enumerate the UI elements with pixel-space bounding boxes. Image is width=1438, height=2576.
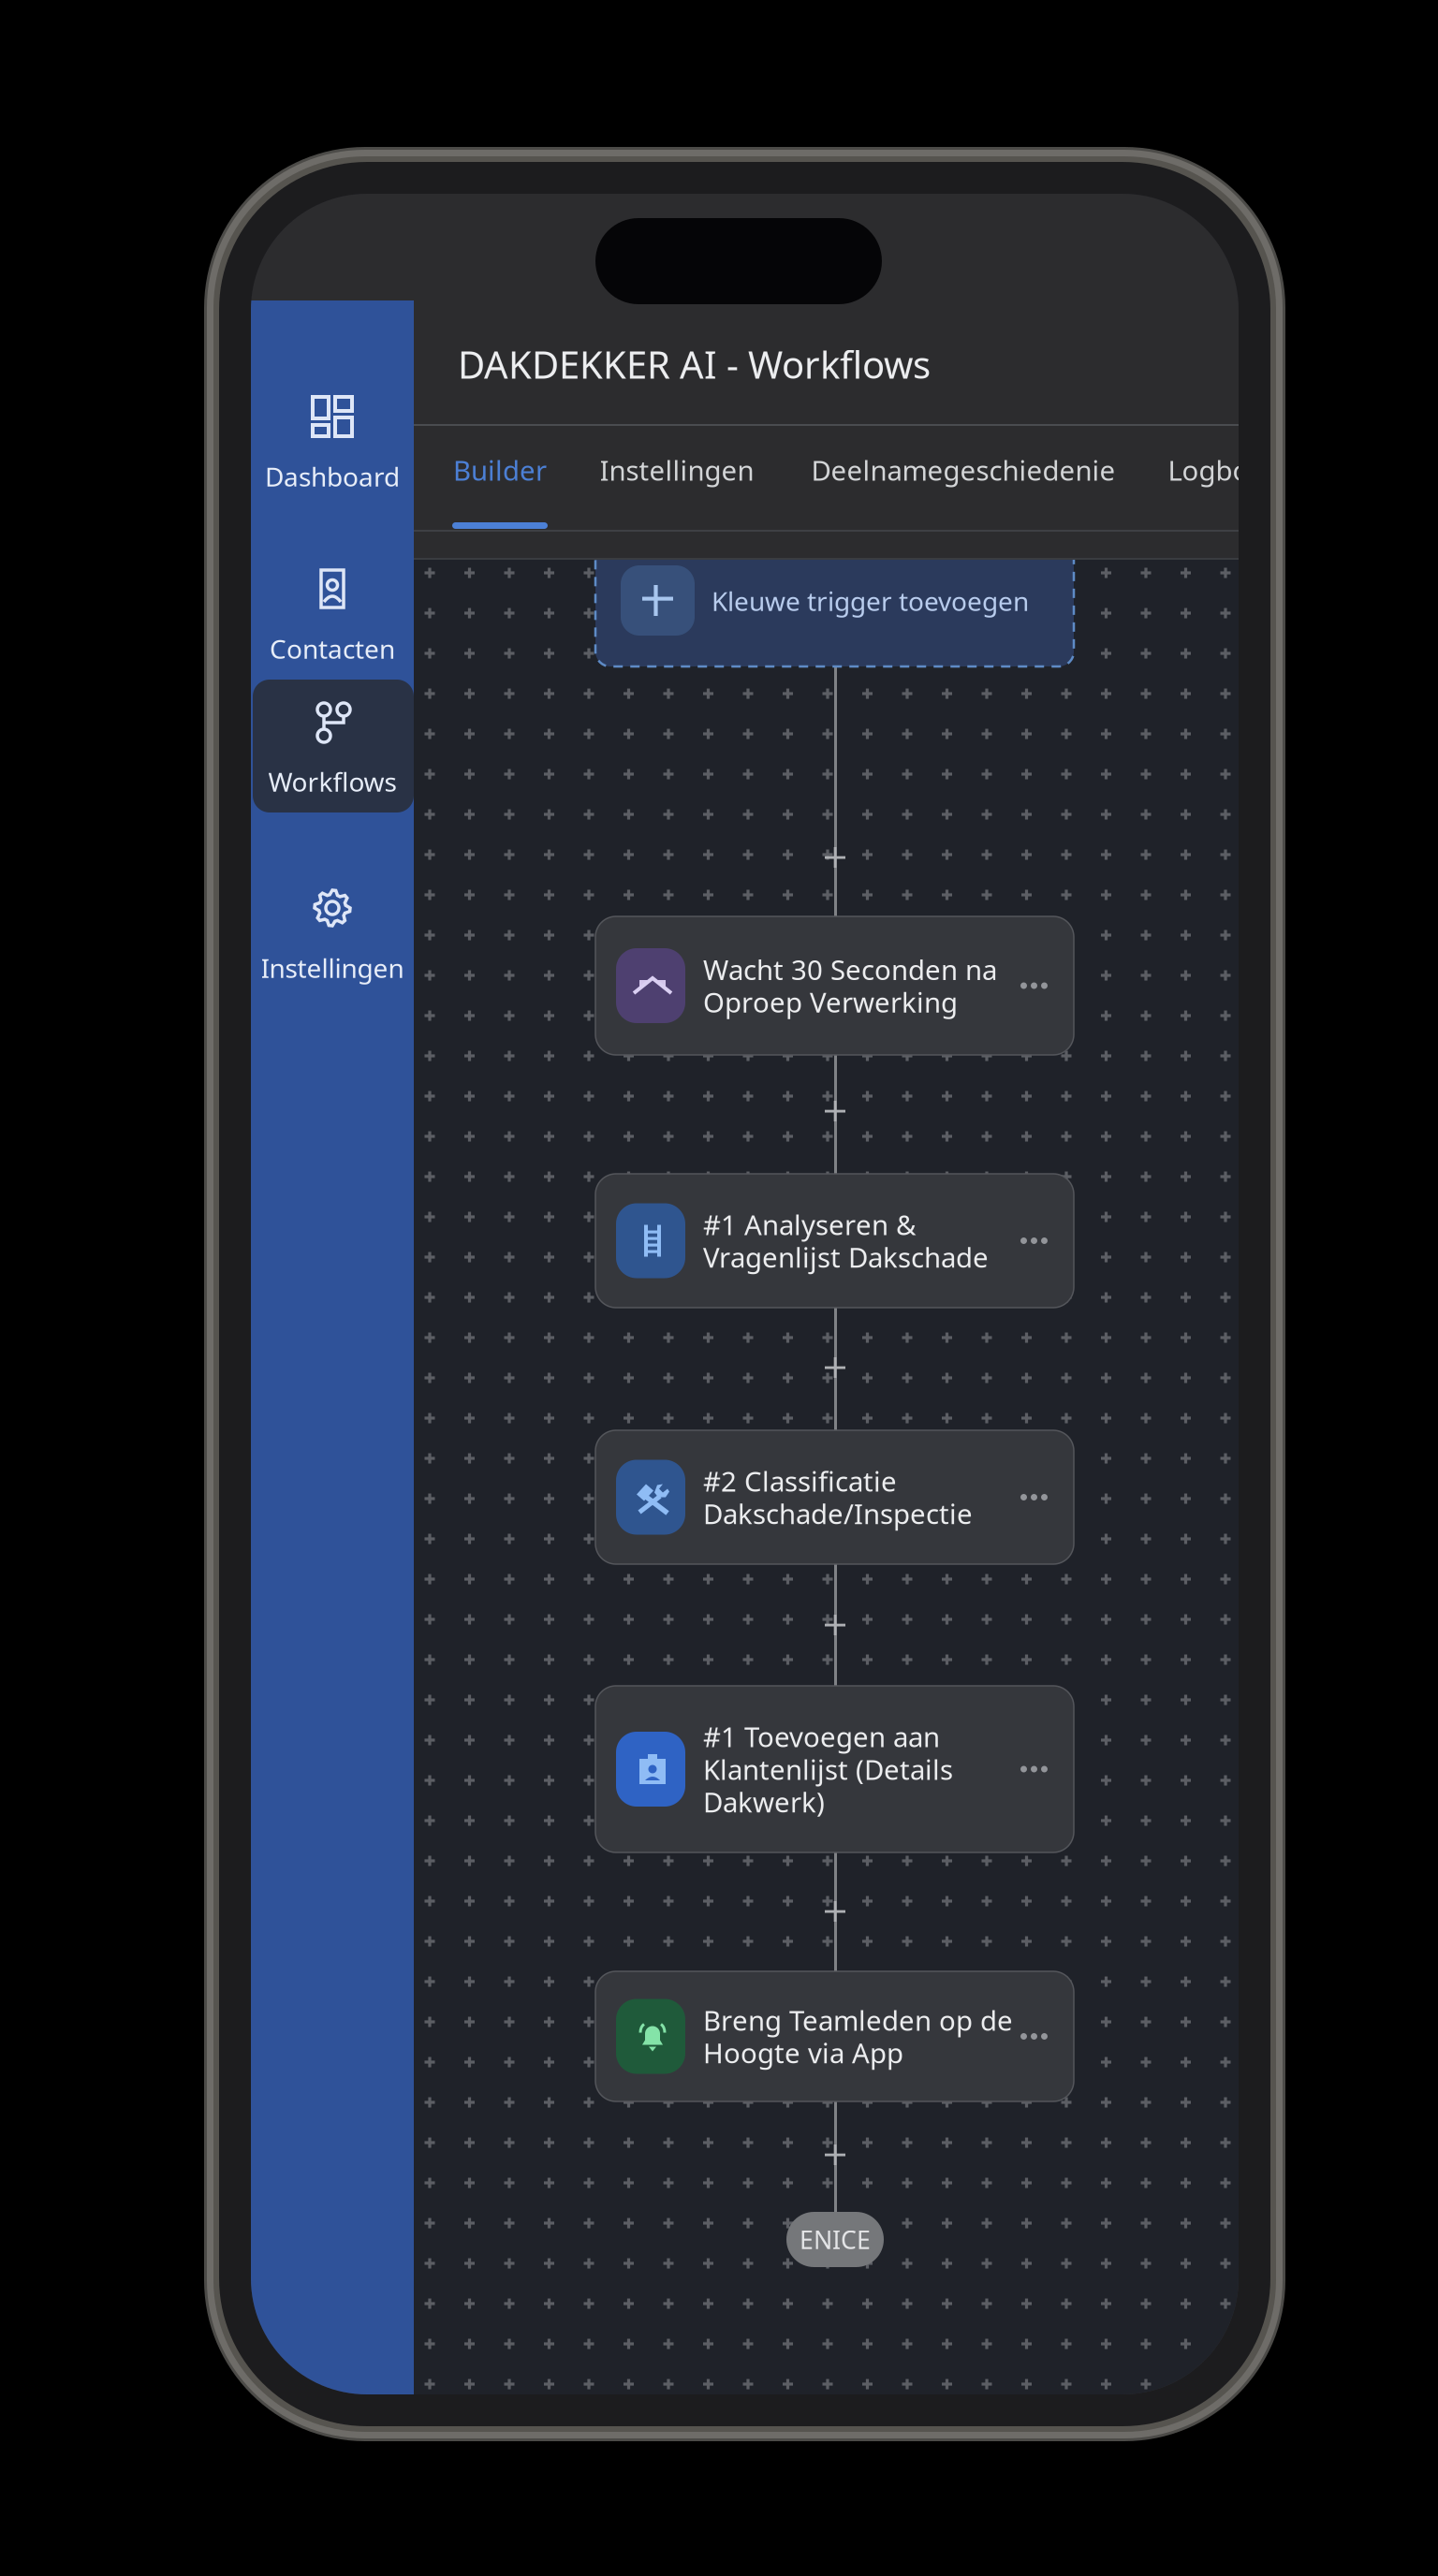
button[interactable]: Kleuwe trigger toevoegen [595,530,1074,666]
button[interactable]: Workflows [251,680,414,812]
staticText: #2 Classificatie [703,1463,897,1499]
staticText: Klantenlijst (Details [703,1751,953,1787]
staticText: Logbo [1168,452,1249,488]
staticText: #1 Toevoegen aan [703,1718,940,1755]
staticText: Wacht 30 Seconden na [703,951,997,988]
staticText: Instellingen [261,950,404,985]
staticText: ENICE [800,2223,871,2256]
staticText: Dakschade/Inspectie [703,1495,973,1532]
staticText: Hoogte via App [703,2034,903,2071]
staticText: Kleuwe trigger toevoegen [712,584,1029,618]
staticText: Instellingen [600,452,754,488]
button[interactable]: ENICE [786,2212,884,2267]
button[interactable]: #1 Toevoegen aan [595,1686,1074,1852]
staticText: Oproep Verwerking [703,984,958,1020]
staticText: Builder [453,452,547,488]
staticText: Breng Teamleden op de [703,2002,1013,2038]
button[interactable]: Wacht 30 Seconden na [595,916,1074,1055]
button[interactable]: Instellingen [251,822,414,955]
button[interactable]: #1 Analyseren & [595,1174,1074,1308]
button[interactable]: Deelnamegeschiedenie [414,194,721,300]
staticText: Dakwerk) [703,1784,825,1820]
staticText: DAKDEKKER AI - Workflows [458,339,931,389]
staticText: Dashboard [265,459,400,494]
button[interactable]: Contacten [251,503,414,636]
staticText: Vragenlijst Dakschade [703,1239,989,1275]
staticText: #1 Analyseren & [703,1206,916,1243]
button[interactable]: Breng Teamleden op de [595,1971,1074,2101]
staticText: Contacten [270,631,395,666]
staticText: Workflows [268,764,396,799]
button[interactable]: #2 Classificatie [595,1430,1074,1564]
staticText: Deelnamegeschiedenie [811,452,1115,488]
button[interactable]: Dashboard [251,330,414,463]
